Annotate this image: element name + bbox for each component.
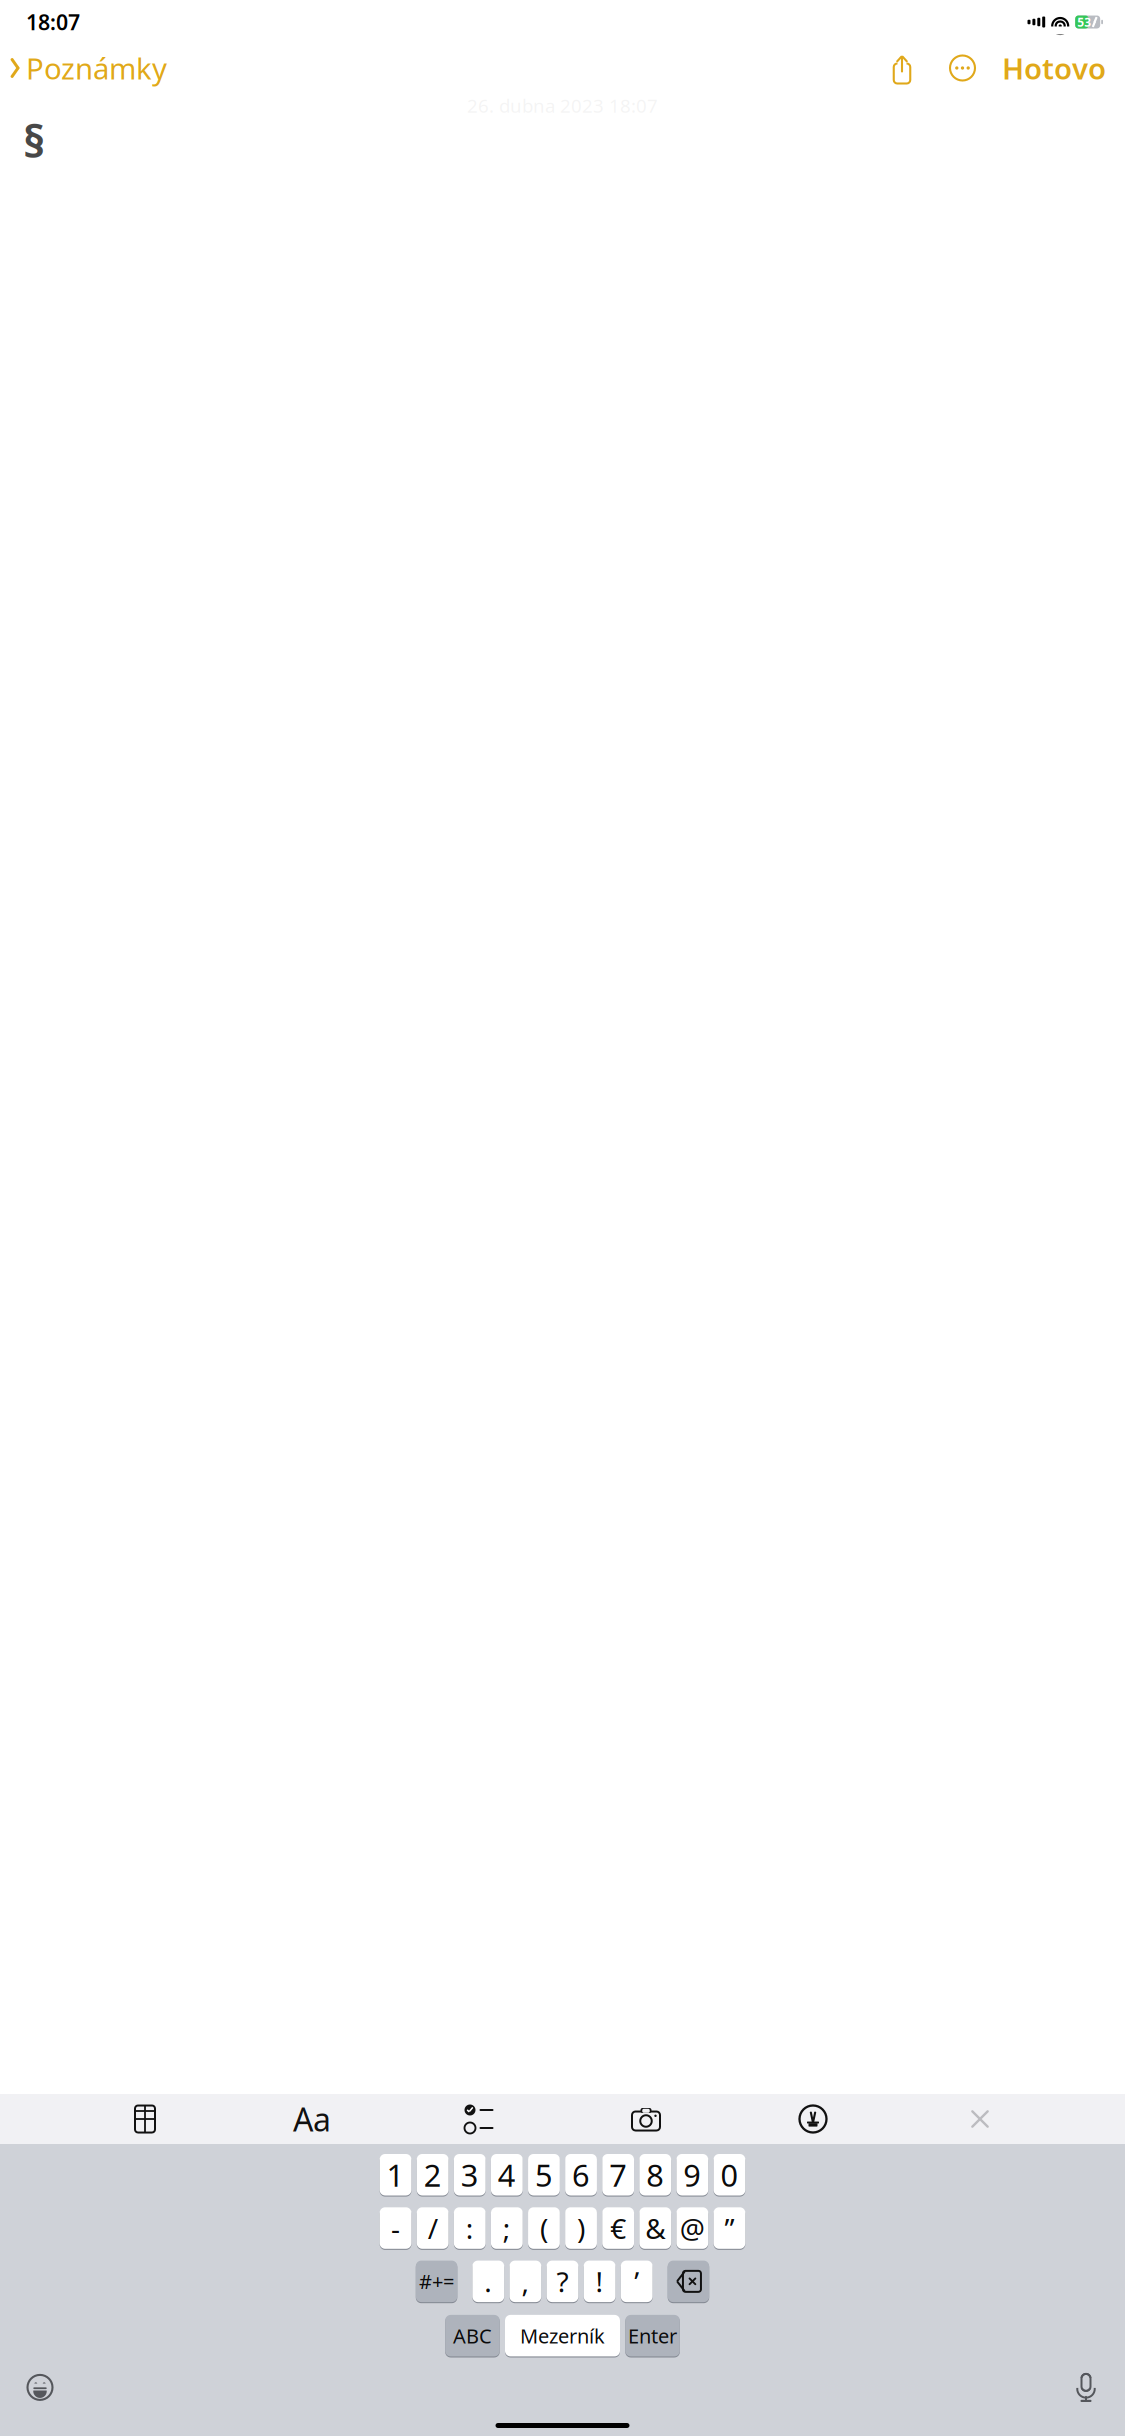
button[interactable]: ” [713, 2207, 745, 2249]
button[interactable]: & [639, 2207, 671, 2249]
button[interactable]: Hide keyboard [958, 2100, 1002, 2138]
staticText: 6 [572, 2154, 590, 2195]
staticText: ” [724, 2209, 734, 2247]
button[interactable]: #+= [416, 2261, 457, 2302]
button[interactable]: Dictate [1064, 2362, 1108, 2412]
staticText: € [610, 2209, 626, 2247]
button[interactable]: - [380, 2207, 411, 2249]
staticText: 4 [498, 2154, 516, 2195]
button[interactable]: Emoji [17, 2364, 63, 2410]
button[interactable]: Insert table [123, 2100, 167, 2138]
staticText: Hotovo [1002, 48, 1106, 87]
button[interactable]: Delete [668, 2261, 709, 2302]
button[interactable]: 5 [528, 2154, 560, 2195]
staticText: & [645, 2209, 665, 2247]
staticText: : [466, 2209, 474, 2247]
staticText: ! [596, 2263, 604, 2300]
staticText: Enter [628, 2322, 677, 2349]
staticText: - [391, 2209, 400, 2247]
staticText: ’ [634, 2263, 639, 2300]
staticText: ABC [453, 2322, 492, 2349]
staticText: . [484, 2263, 492, 2300]
staticText: #+= [419, 2268, 454, 2295]
button[interactable]: 0 [713, 2154, 745, 2195]
staticText: 26. dubna 2023 18:07 [467, 93, 658, 118]
staticText: 53 [1077, 14, 1091, 30]
button[interactable]: 8 [639, 2154, 671, 2195]
staticText: 8 [646, 2154, 664, 2195]
button[interactable]: Enter [625, 2315, 680, 2356]
button[interactable]: 4 [491, 2154, 523, 2195]
button[interactable]: ? [547, 2261, 578, 2302]
staticText: 7 [609, 2154, 627, 2195]
staticText: Poznámky [26, 48, 167, 87]
button[interactable]: Share [883, 47, 921, 89]
button[interactable]: 3 [454, 2154, 486, 2195]
button[interactable]: 1 [380, 2154, 411, 2195]
button[interactable]: ABC [445, 2315, 500, 2356]
button[interactable]: . [472, 2261, 504, 2302]
button[interactable]: Poznámky [0, 42, 167, 93]
button[interactable]: Checklist [457, 2100, 501, 2138]
staticText: , [521, 2263, 529, 2300]
staticText: 1 [386, 2154, 404, 2195]
button[interactable]: 9 [676, 2154, 708, 2195]
button[interactable]: : [454, 2207, 486, 2249]
staticText: @ [680, 2209, 705, 2247]
button[interactable]: ) [565, 2207, 597, 2249]
button[interactable]: ; [491, 2207, 523, 2249]
staticText: ) [577, 2209, 585, 2247]
button[interactable]: ( [528, 2207, 560, 2249]
button[interactable]: Mezerník [505, 2315, 620, 2356]
button[interactable]: Hotovo [1002, 42, 1125, 93]
staticText: § [23, 110, 45, 170]
button[interactable]: Markup [791, 2100, 835, 2138]
staticText: / [428, 2209, 438, 2247]
button[interactable]: Format [290, 2100, 334, 2138]
button[interactable]: More [943, 48, 982, 87]
button[interactable]: 7 [602, 2154, 634, 2195]
staticText: 0 [720, 2154, 738, 2195]
button[interactable]: @ [676, 2207, 708, 2249]
staticText: ( [540, 2209, 548, 2247]
staticText: 5 [535, 2154, 553, 2195]
button[interactable]: ! [584, 2261, 615, 2302]
staticText: ; [503, 2209, 511, 2247]
button[interactable]: ’ [621, 2261, 653, 2302]
button[interactable]: , [509, 2261, 541, 2302]
button[interactable]: / [417, 2207, 449, 2249]
button[interactable]: € [602, 2207, 634, 2249]
button[interactable]: Camera [624, 2100, 668, 2138]
button[interactable]: 6 [565, 2154, 597, 2195]
staticText: 3 [461, 2154, 479, 2195]
staticText: 18:07 [26, 8, 80, 36]
staticText: 2 [424, 2154, 442, 2195]
staticText: Mezerník [520, 2322, 605, 2349]
staticText: ? [556, 2263, 568, 2300]
staticText: 9 [683, 2154, 701, 2195]
button[interactable]: 2 [417, 2154, 449, 2195]
staticText: Aa [293, 2098, 331, 2140]
